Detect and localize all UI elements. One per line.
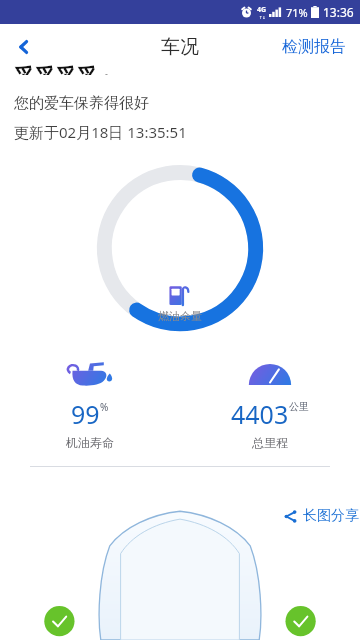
button[interactable]: 长图分享 [274, 500, 360, 532]
staticText: 燃油余量 [158, 309, 202, 323]
staticText: 妥妥妥妥 · [14, 62, 110, 75]
staticText: % [100, 400, 109, 414]
staticText: 机油寿命 [66, 435, 114, 450]
button[interactable]: Back [0, 24, 48, 70]
staticText: 4403 [231, 397, 289, 431]
staticText: 71% [286, 5, 308, 20]
staticText: 更新于02月18日 13:35:51 [14, 122, 187, 142]
staticText: 长图分享 [303, 507, 359, 525]
staticText: 车况 [161, 35, 199, 59]
staticText: 检测报告 [282, 37, 346, 57]
button[interactable]: 检测报告 [268, 27, 360, 67]
staticText: 13:36 [323, 4, 354, 20]
staticText: 您的爱车保养得很好 [14, 94, 149, 113]
button[interactable]: 4403 [180, 357, 360, 452]
button[interactable]: 99 [0, 357, 180, 452]
staticText: 99 [71, 397, 100, 431]
staticText: 总里程 [252, 435, 288, 450]
staticText: 4G [257, 5, 267, 15]
staticText: ↑↓ [259, 15, 266, 20]
staticText: 公里 [289, 400, 309, 413]
